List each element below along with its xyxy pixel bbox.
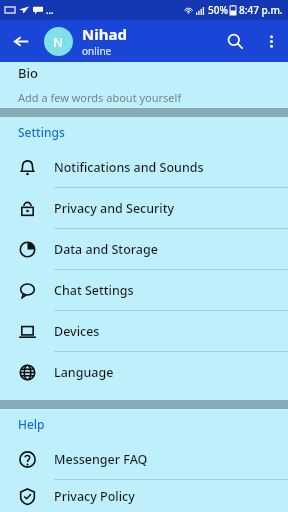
staticText: Chat Settings <box>54 282 134 299</box>
staticText: Notifications and Sounds <box>54 159 204 176</box>
button[interactable]: Chat Settings <box>0 270 288 310</box>
button[interactable]: Messenger FAQ <box>0 439 288 479</box>
button[interactable]: Bio <box>0 62 288 108</box>
button[interactable]: Devices <box>0 311 288 351</box>
staticText: 50% <box>208 3 228 17</box>
button[interactable]: Search <box>216 22 254 60</box>
button[interactable]: More options <box>254 24 288 58</box>
button[interactable]: Data and Storage <box>0 229 288 269</box>
staticText: Language <box>54 364 114 381</box>
button[interactable]: Privacy Policy <box>0 480 288 512</box>
button[interactable]: Privacy and Security <box>0 188 288 228</box>
staticText: Nihad <box>82 24 127 44</box>
staticText: Add a few words about yourself <box>18 90 182 105</box>
staticText: N <box>53 33 64 51</box>
staticText: online <box>82 44 112 58</box>
button[interactable]: Back <box>6 26 36 56</box>
staticText: Privacy and Security <box>54 200 175 217</box>
staticText: Bio <box>18 64 38 82</box>
button[interactable]: Notifications and Sounds <box>0 147 288 187</box>
staticText: 8:47 p.m. <box>239 3 283 17</box>
staticText: Messenger FAQ <box>54 451 148 468</box>
staticText: Privacy Policy <box>54 488 135 505</box>
staticText: Devices <box>54 323 100 340</box>
staticText: Data and Storage <box>54 241 158 258</box>
staticText: Settings <box>18 124 65 140</box>
button[interactable]: Language <box>0 352 288 392</box>
button[interactable]: N <box>44 24 127 58</box>
staticText: ... <box>46 4 54 16</box>
staticText: Help <box>18 416 45 432</box>
